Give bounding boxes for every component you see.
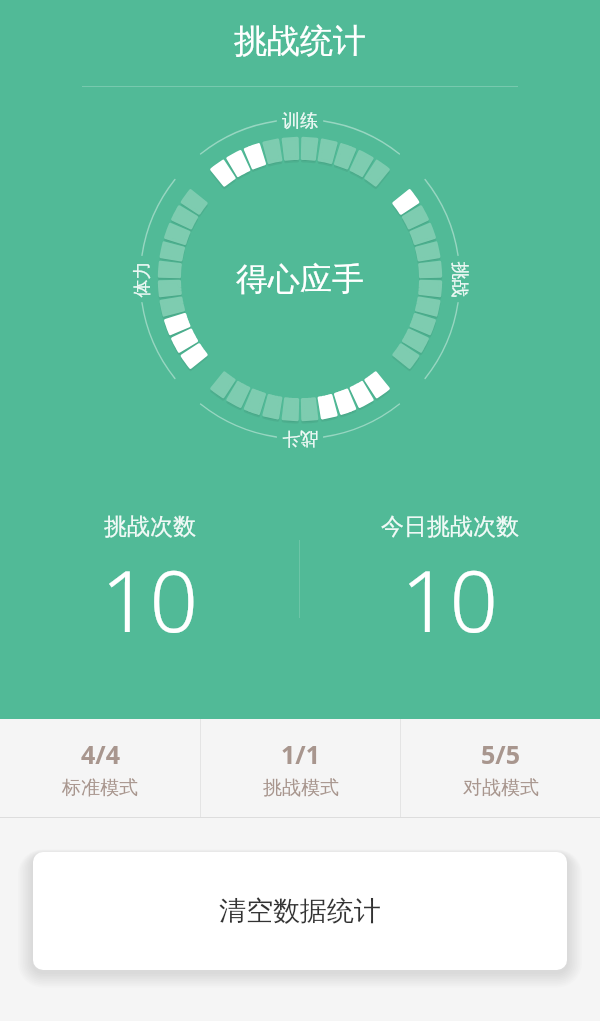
staticText: 10 [401,541,499,657]
button[interactable]: 清空数据统计 [33,852,567,970]
staticText: 挑战统计 [234,20,366,62]
staticText: 清空数据统计 [219,894,381,928]
staticText: 10 [101,541,199,657]
staticText: 5/5 [481,737,520,771]
staticText: 训练 [282,110,318,133]
staticText: 挑战次数 [104,512,196,541]
staticText: 战斗 [282,427,318,450]
staticText: 挑战 [447,261,470,297]
staticText: 体力 [130,261,153,297]
staticText: 1/1 [281,737,320,771]
staticText: 今日挑战次数 [381,512,519,541]
button[interactable]: 5/5 [401,719,600,817]
staticText: 4/4 [81,737,120,771]
staticText: 标准模式 [62,776,138,800]
staticText: 挑战模式 [263,776,339,800]
staticText: 对战模式 [463,776,539,800]
button[interactable]: 4/4 [0,719,200,817]
button[interactable]: 1/1 [201,719,400,817]
staticText: 得心应手 [236,259,364,299]
